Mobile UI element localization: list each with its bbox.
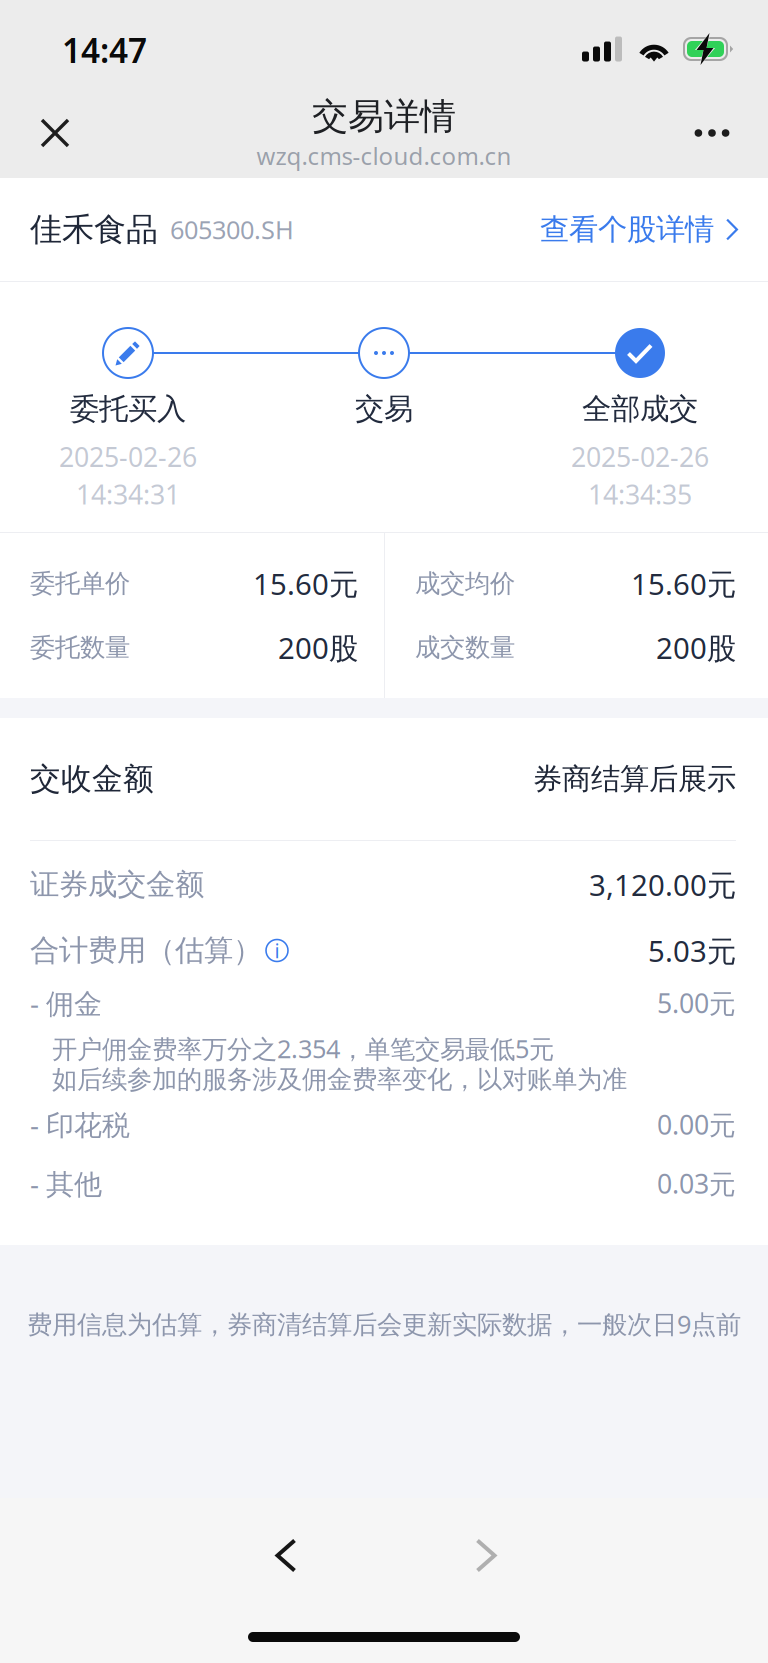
staticText: - 其他 — [30, 1165, 102, 1202]
staticText: 200股 — [656, 628, 736, 667]
staticText: 0.03元 — [657, 1166, 736, 1201]
staticText: 全部成交 — [582, 391, 698, 427]
staticText: - 印花税 — [30, 1106, 130, 1143]
staticText: 委托单价 — [30, 568, 130, 599]
staticText: 委托数量 — [30, 632, 130, 663]
staticText: 交易 — [355, 391, 413, 427]
button[interactable]: Back — [236, 1505, 336, 1605]
button[interactable]: More options — [672, 88, 752, 178]
button[interactable]: Fee estimate info — [262, 939, 288, 961]
staticText: i — [274, 937, 279, 964]
staticText: 15.60元 — [253, 564, 358, 603]
staticText: 查看个股详情 — [540, 211, 714, 247]
staticText: 2025-02-26 — [59, 439, 197, 474]
staticText: 开户佣金费率万分之2.354，单笔交易最低5元 — [52, 1032, 554, 1065]
staticText: 委托买入 — [70, 391, 186, 427]
staticText: 交收金额 — [30, 760, 154, 798]
staticText: 费用信息为估算，券商清结算后会更新实际数据，一般次日9点前 — [27, 1307, 741, 1341]
staticText: 券商结算后展示 — [533, 761, 736, 797]
staticText: wzq.cms-cloud.com.cn — [256, 140, 511, 172]
staticText: 5.00元 — [657, 985, 736, 1021]
staticText: 3,120.00元 — [589, 865, 736, 904]
staticText: 605300.SH — [170, 213, 294, 246]
staticText: 2025-02-26 — [571, 439, 709, 474]
staticText: 14:34:31 — [76, 476, 180, 512]
staticText: 证券成交金额 — [30, 866, 204, 902]
staticText: 15.60元 — [631, 564, 736, 603]
staticText: 合计费用（估算） — [30, 932, 262, 968]
staticText: - 佣金 — [30, 984, 102, 1022]
staticText: 如后续参加的服务涉及佣金费率变化，以对账单为准 — [52, 1064, 627, 1095]
staticText: 成交数量 — [415, 632, 515, 663]
staticText: 交易详情 — [312, 94, 456, 139]
button[interactable]: 查看个股详情 — [540, 211, 738, 247]
staticText: 14:47 — [62, 28, 147, 72]
staticText: 200股 — [278, 628, 358, 667]
staticText: 佳禾食品 — [30, 210, 158, 249]
button[interactable]: Close — [15, 88, 95, 178]
staticText: 5.03元 — [648, 931, 736, 970]
button[interactable]: Forward — [436, 1505, 536, 1605]
staticText: 成交均价 — [415, 568, 515, 599]
staticText: 0.00元 — [657, 1107, 736, 1142]
staticText: 14:34:35 — [588, 476, 692, 512]
